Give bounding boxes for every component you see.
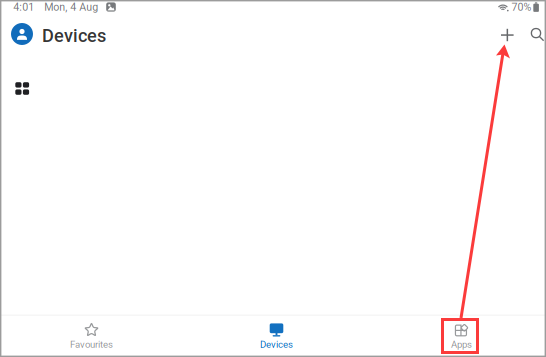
button[interactable]: Account (11, 23, 33, 45)
staticText: Devices (42, 25, 106, 46)
button[interactable]: Devices (236, 316, 316, 356)
staticText: Apps (451, 339, 472, 350)
staticText: 70% (511, 1, 531, 13)
button[interactable]: Add device (491, 19, 523, 51)
staticText: Favourites (70, 339, 113, 350)
staticText: Mon, 4 Aug (44, 1, 98, 13)
staticText: 4:01 (13, 1, 34, 13)
button[interactable]: Search (521, 18, 546, 50)
button[interactable]: Favourites (51, 316, 131, 356)
button[interactable]: Apps (421, 316, 501, 356)
staticText: Devices (260, 339, 293, 350)
